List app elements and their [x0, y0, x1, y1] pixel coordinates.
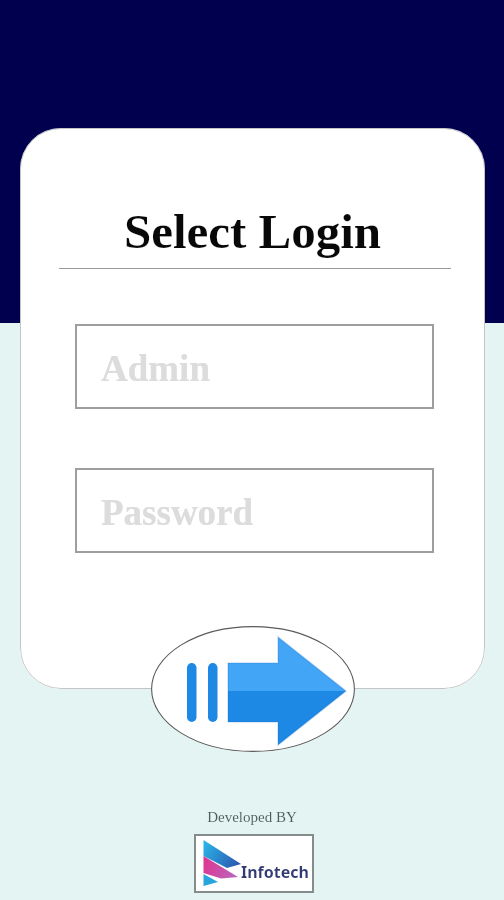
staticText: Password [101, 492, 254, 533]
button[interactable]: Login [151, 626, 355, 752]
staticText: Developed BY [0, 809, 504, 826]
staticText: Admin [101, 348, 210, 389]
button[interactable]: Infotech logo [194, 834, 314, 893]
staticText: Infotech [241, 861, 309, 883]
staticText: Select Login [20, 204, 485, 258]
button[interactable]: Admin [75, 324, 434, 409]
button[interactable]: Password [75, 468, 434, 553]
